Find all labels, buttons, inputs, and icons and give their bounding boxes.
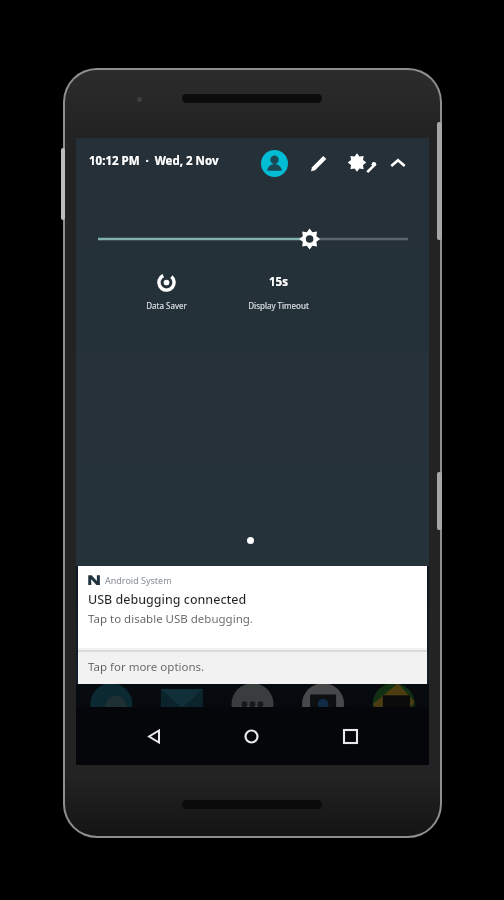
button[interactable]: Back — [138, 720, 170, 752]
staticText: Tap to disable USB debugging. — [88, 611, 253, 627]
staticText: Android System — [105, 574, 172, 586]
button[interactable]: Edit — [304, 149, 333, 178]
button[interactable]: User account — [261, 150, 288, 177]
button[interactable]: 15s — [228, 268, 328, 326]
button[interactable]: Tap for more options. — [78, 648, 427, 684]
button[interactable]: Android System — [78, 566, 427, 648]
staticText: USB debugging connected — [88, 591, 247, 608]
staticText: Display Timeout — [248, 300, 309, 311]
staticText: Tap for more options. — [88, 659, 205, 675]
button[interactable]: Settings — [344, 148, 375, 179]
button[interactable]: Recent apps — [334, 720, 366, 752]
staticText: 10:12 PM · Wed, 2 Nov — [89, 153, 219, 169]
staticText: 15s — [269, 274, 288, 290]
button[interactable]: Brightness — [94, 224, 412, 254]
button[interactable]: Home — [235, 720, 267, 752]
button[interactable]: Collapse — [384, 150, 412, 178]
button[interactable]: Data Saver — [116, 268, 216, 326]
staticText: Data Saver — [146, 300, 187, 311]
